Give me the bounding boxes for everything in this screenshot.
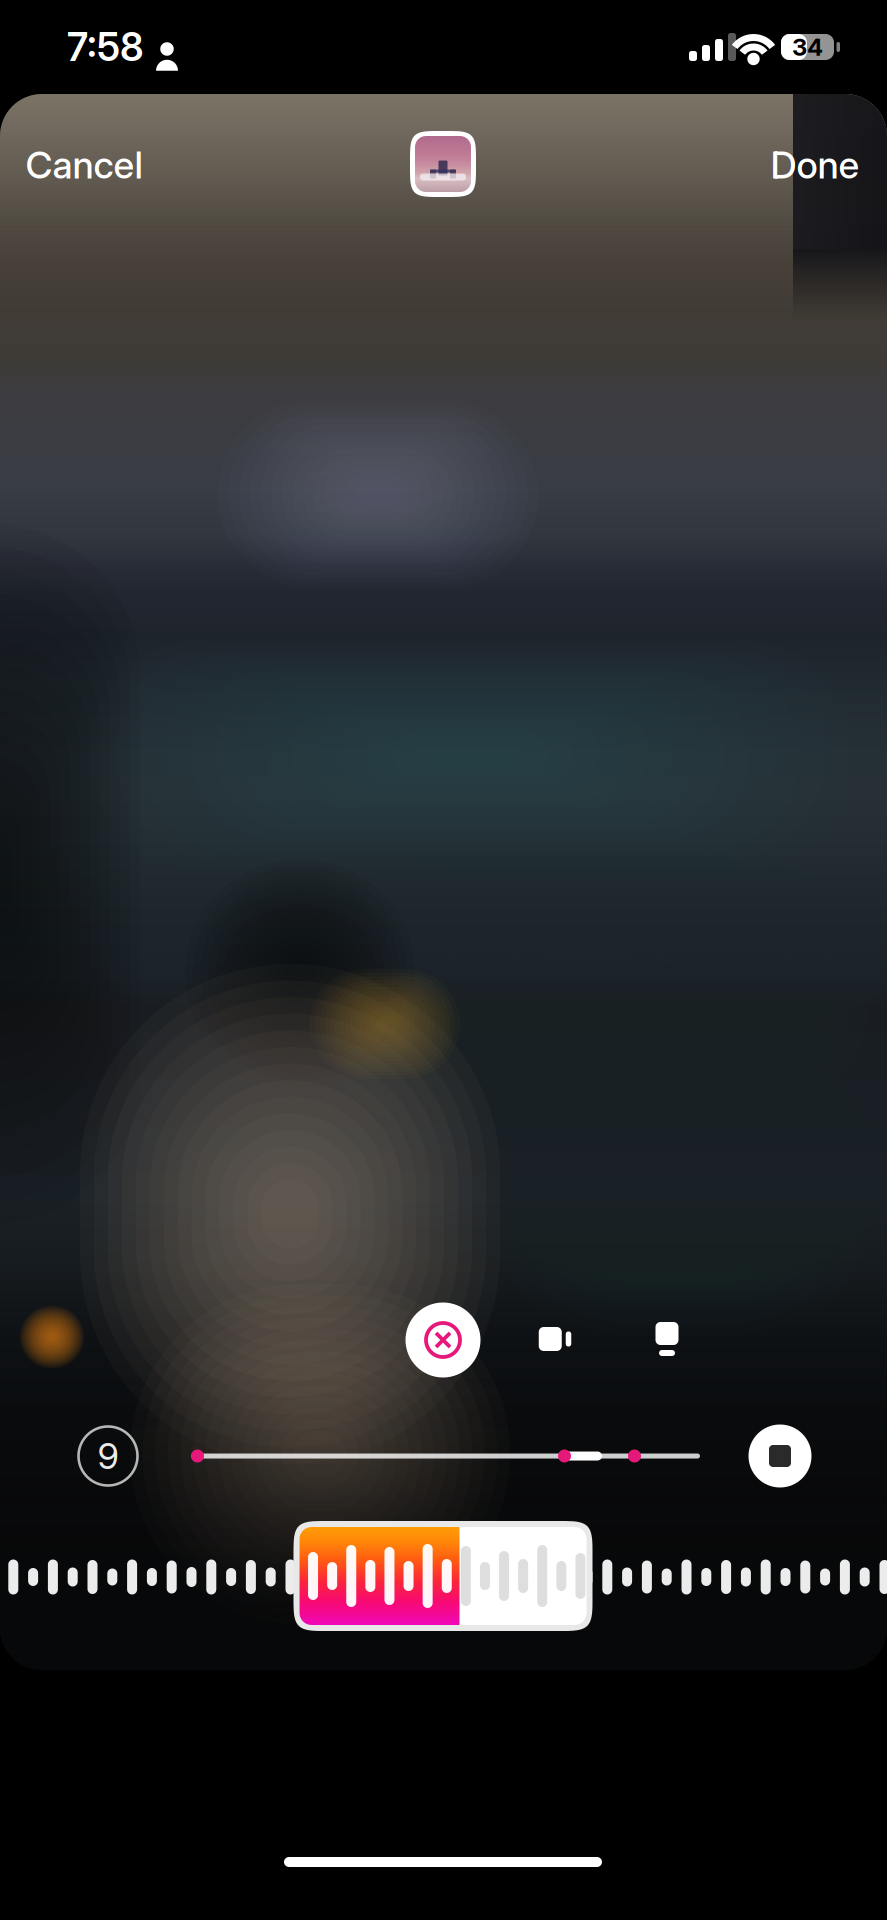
button[interactable]: Stacked layout xyxy=(631,1303,703,1375)
button[interactable]: Clip thumbnail xyxy=(410,131,476,197)
staticText: Cancel xyxy=(25,142,142,188)
button[interactable]: Cancel xyxy=(9,126,158,204)
button[interactable]: Side by side layout xyxy=(519,1303,591,1375)
staticText: Done xyxy=(770,142,859,188)
button[interactable]: Voiceover clip xyxy=(293,1521,592,1631)
button[interactable]: Stop recording xyxy=(740,1416,820,1496)
button[interactable]: Discard recording xyxy=(398,1295,488,1385)
button[interactable]: Done xyxy=(754,126,875,204)
staticText: 7:58 xyxy=(67,24,144,70)
staticText: 9 xyxy=(97,1434,118,1478)
button[interactable]: Takes: 9 xyxy=(71,1419,145,1493)
staticText: 34 xyxy=(792,32,823,61)
